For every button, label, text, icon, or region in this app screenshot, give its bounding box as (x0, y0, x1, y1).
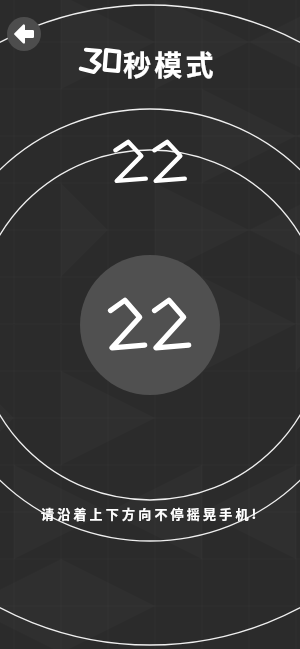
staticText: 秒模式 (123, 44, 217, 85)
staticText: 请沿着上下方向不停摇晃手机! (41, 504, 260, 523)
button[interactable]: Back (7, 17, 41, 51)
